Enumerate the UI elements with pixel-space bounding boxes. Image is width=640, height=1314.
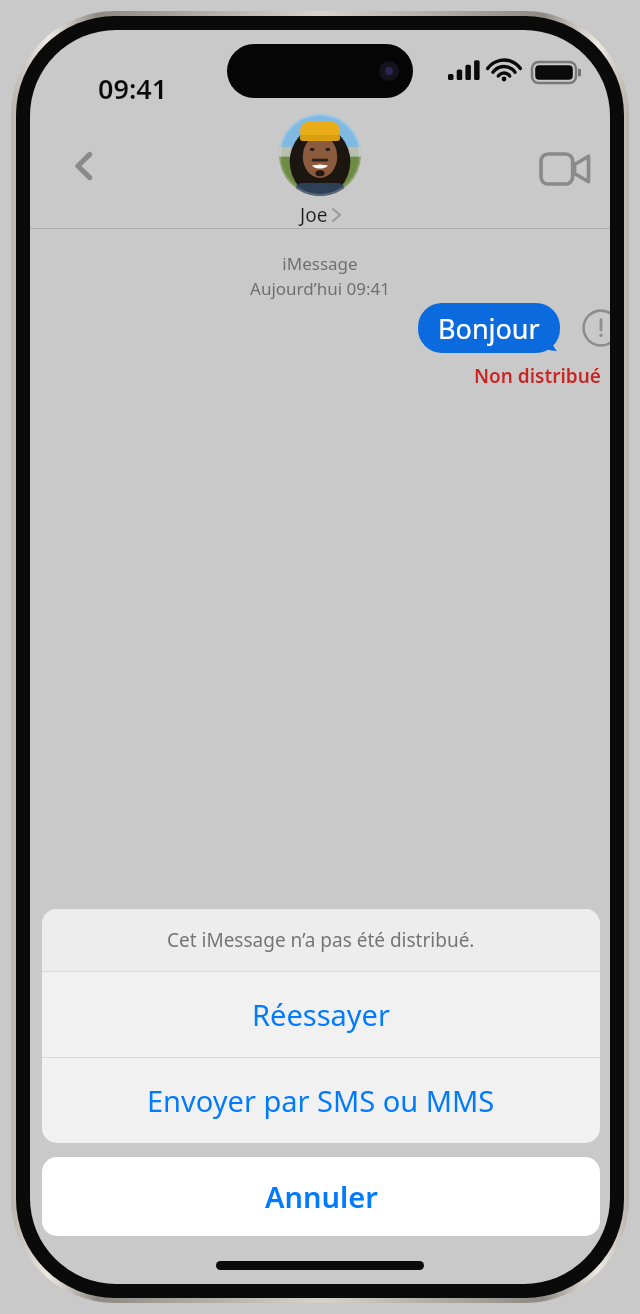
button[interactable]: Joe bbox=[270, 114, 370, 228]
button[interactable]: Retour bbox=[48, 130, 120, 202]
staticText: Bonjour bbox=[438, 310, 540, 346]
staticText: iMessage bbox=[282, 252, 358, 275]
button[interactable]: Réessayer bbox=[42, 972, 600, 1057]
staticText: Envoyer par SMS ou MMS bbox=[147, 1081, 495, 1120]
button[interactable]: Bonjour bbox=[418, 303, 560, 353]
staticText: Cet iMessage n’a pas été distribué. bbox=[167, 927, 475, 953]
button[interactable]: Message non distribué bbox=[575, 302, 610, 354]
staticText: Aujourd’hui 09:41 bbox=[250, 277, 390, 300]
button[interactable]: FaceTime bbox=[530, 134, 600, 204]
button[interactable]: Envoyer par SMS ou MMS bbox=[42, 1058, 600, 1143]
staticText: Réessayer bbox=[252, 995, 390, 1034]
button[interactable]: Annuler bbox=[42, 1157, 600, 1236]
staticText: Joe bbox=[300, 202, 328, 228]
staticText: 09:41 bbox=[98, 70, 168, 107]
staticText: Annuler bbox=[265, 1177, 378, 1216]
staticText: Non distribué bbox=[474, 363, 601, 389]
